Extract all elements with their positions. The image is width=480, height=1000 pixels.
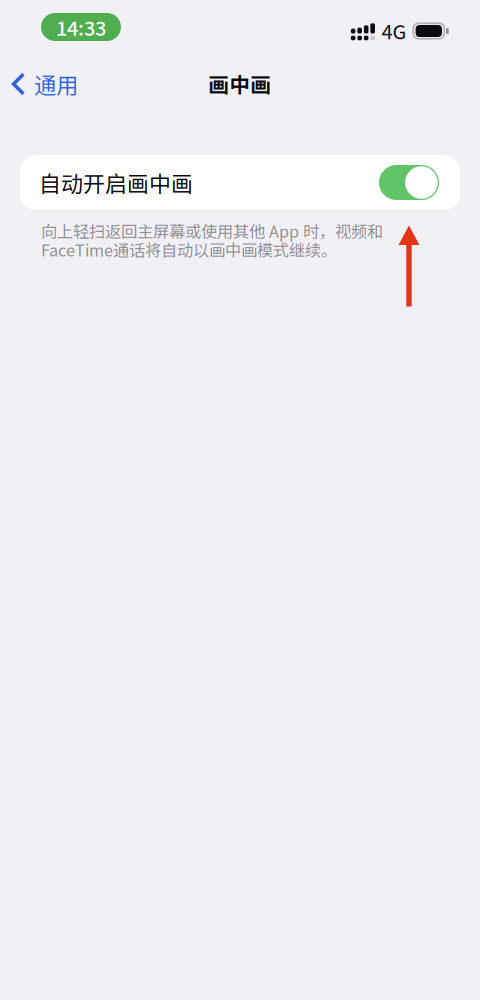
staticText: 自动开启画中画 — [39, 167, 193, 198]
staticText: 14:33 — [56, 12, 106, 41]
button[interactable]: 自动开启画中画 — [20, 155, 460, 210]
staticText: 通用 — [34, 68, 78, 100]
button[interactable]: 通用 — [1, 59, 92, 109]
staticText: 向上轻扫返回主屏幕或使用其他 App 时，视频和 — [41, 219, 383, 243]
staticText: FaceTime通话将自动以画中画模式继续。 — [41, 238, 337, 261]
staticText: 4G — [381, 16, 406, 45]
staticText: 画中画 — [208, 69, 271, 98]
